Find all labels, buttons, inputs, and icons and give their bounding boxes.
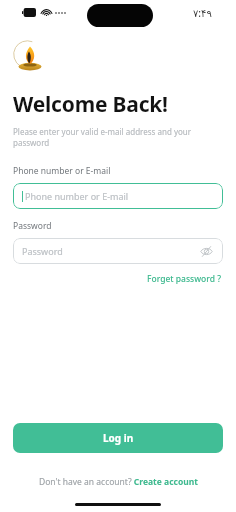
staticText: Password bbox=[13, 220, 52, 232]
staticText: ۷:۴۹ bbox=[193, 6, 212, 20]
button[interactable]: Phone number or E-mail bbox=[13, 183, 223, 209]
staticText: Phone number or E-mail bbox=[25, 190, 129, 202]
staticText: Password bbox=[22, 245, 63, 257]
button[interactable]: Log in bbox=[13, 423, 223, 453]
staticText: Log in bbox=[103, 431, 134, 445]
button[interactable]: Don't have an account? Create account bbox=[37, 474, 200, 490]
button[interactable]: Password bbox=[13, 238, 223, 264]
staticText: Phone number or E-mail bbox=[13, 165, 111, 177]
button[interactable]: Show password bbox=[198, 243, 214, 259]
staticText: Don't have an account? Create account bbox=[39, 476, 198, 488]
staticText: Forget password ? bbox=[147, 273, 221, 285]
staticText: Welcome Back! bbox=[13, 90, 168, 119]
staticText: Please enter your valid e-mail address a… bbox=[13, 126, 209, 149]
button[interactable]: Forget password ? bbox=[145, 271, 223, 287]
